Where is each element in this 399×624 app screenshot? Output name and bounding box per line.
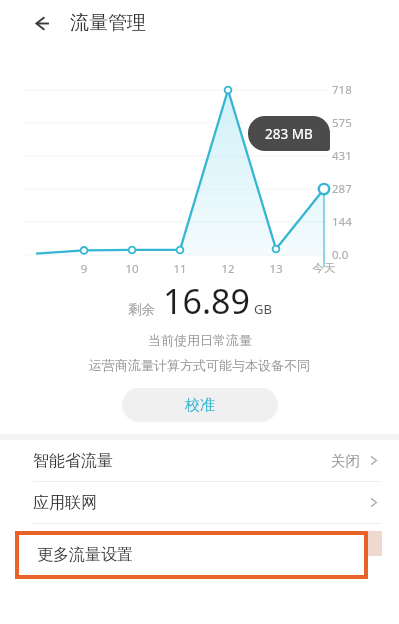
staticText: 智能省流量 xyxy=(33,451,113,471)
button[interactable]: 智能省流量 xyxy=(0,440,399,481)
staticText: 更多流量设置 xyxy=(37,545,133,565)
button[interactable]: 应用联网 xyxy=(0,482,399,523)
staticText: 校准 xyxy=(185,396,215,415)
staticText: GB xyxy=(254,300,272,318)
staticText: 12 xyxy=(211,261,245,277)
staticText: 今天 xyxy=(307,261,341,275)
staticText: 当前使用日常流量 xyxy=(148,332,252,348)
staticText: 流量管理 xyxy=(70,11,146,35)
staticText: 应用联网 xyxy=(33,493,97,513)
staticText: 287 xyxy=(332,181,352,197)
staticText: 575 xyxy=(332,115,352,131)
button[interactable]: 返回 xyxy=(26,7,58,39)
staticText: 13 xyxy=(259,261,293,277)
staticText: 关闭 xyxy=(331,452,360,470)
staticText: 11 xyxy=(163,261,197,277)
staticText: 431 xyxy=(332,148,352,164)
staticText: 718 xyxy=(332,82,352,98)
button[interactable]: 校准 xyxy=(122,388,278,422)
staticText: 剩余 xyxy=(128,301,155,318)
staticText: 16.89 xyxy=(163,278,250,324)
button[interactable]: 更多流量设置 xyxy=(15,531,368,579)
staticText: 10 xyxy=(115,261,149,277)
staticText: 运营商流量计算方式可能与本设备不同 xyxy=(89,357,310,373)
staticText: 144 xyxy=(332,214,352,230)
staticText: 283 MB xyxy=(265,125,313,143)
staticText: 9 xyxy=(67,261,101,277)
staticText: 0.0 xyxy=(332,247,349,263)
